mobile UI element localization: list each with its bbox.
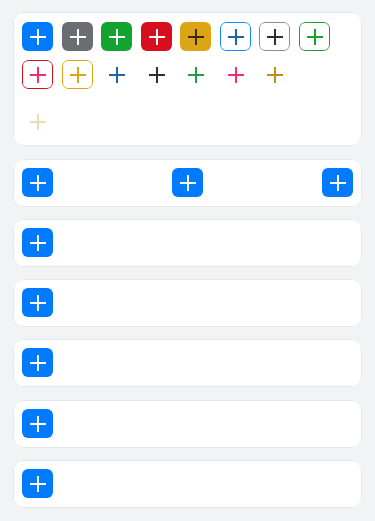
button[interactable]: Add bbox=[259, 60, 290, 89]
button[interactable]: Add bbox=[299, 22, 330, 51]
button[interactable]: Add bbox=[180, 60, 211, 89]
button[interactable]: Add bbox=[22, 60, 53, 89]
button[interactable]: Add bbox=[259, 22, 290, 51]
button[interactable]: Add bbox=[172, 168, 203, 197]
button[interactable]: Add bbox=[22, 409, 53, 438]
button[interactable]: Add bbox=[141, 22, 172, 51]
button[interactable]: Add bbox=[22, 288, 53, 317]
button[interactable]: Add bbox=[22, 107, 53, 136]
button[interactable]: Add bbox=[101, 22, 132, 51]
button[interactable]: Add bbox=[220, 22, 251, 51]
button[interactable]: Add bbox=[22, 348, 53, 377]
button[interactable]: Add bbox=[322, 168, 353, 197]
button[interactable]: Add bbox=[22, 469, 53, 498]
button[interactable]: Add bbox=[22, 168, 53, 197]
button[interactable]: Add bbox=[22, 228, 53, 257]
button[interactable]: Add bbox=[22, 22, 53, 51]
button[interactable]: Add bbox=[220, 60, 251, 89]
button[interactable]: Add bbox=[101, 60, 132, 89]
button[interactable]: Add bbox=[62, 22, 93, 51]
button[interactable]: Add bbox=[141, 60, 172, 89]
button[interactable]: Add bbox=[62, 60, 93, 89]
button[interactable]: Add bbox=[180, 22, 211, 51]
